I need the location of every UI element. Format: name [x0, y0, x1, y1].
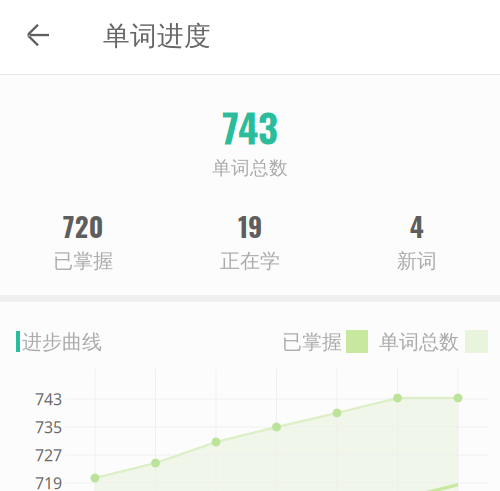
staticText: 720: [63, 206, 104, 246]
staticText: 已掌握: [282, 330, 342, 354]
staticText: 743: [222, 98, 278, 156]
staticText: 735: [35, 416, 62, 438]
staticText: 4: [410, 206, 424, 246]
staticText: 新词: [397, 249, 437, 273]
staticText: 719: [35, 472, 62, 491]
staticText: 进步曲线: [22, 330, 102, 354]
staticText: 正在学: [220, 249, 280, 273]
staticText: 743: [35, 388, 62, 410]
button[interactable]: Back: [0, 0, 76, 74]
staticText: 单词总数: [379, 330, 459, 354]
staticText: 19: [238, 206, 262, 246]
staticText: 单词总数: [212, 156, 288, 179]
staticText: 727: [35, 444, 62, 466]
staticText: 单词进度: [103, 20, 211, 52]
staticText: 已掌握: [53, 249, 113, 273]
